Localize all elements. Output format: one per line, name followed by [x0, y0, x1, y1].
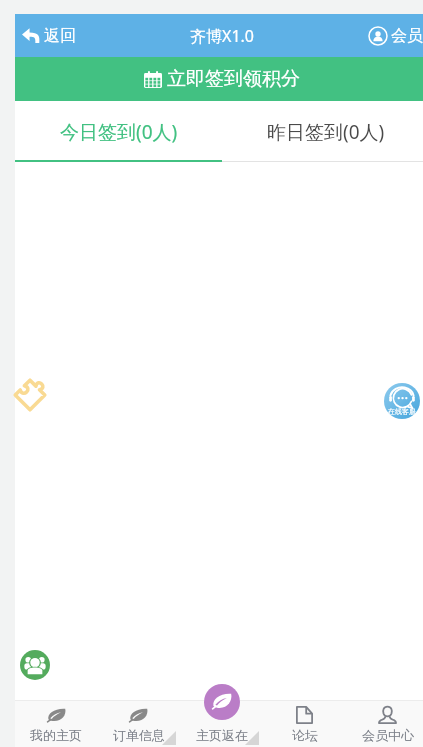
button[interactable]: 我的主页 [15, 700, 97, 747]
staticText: 返回 [44, 26, 76, 46]
staticText: 论坛 [292, 727, 318, 743]
button[interactable]: Customer service [384, 383, 420, 419]
button[interactable]: 订单信息 [97, 700, 180, 747]
staticText: 齐博X1.0 [190, 25, 254, 47]
staticText: 会员 [391, 26, 423, 46]
button[interactable]: 返回 [15, 14, 86, 57]
button[interactable]: 会员中心 [346, 700, 423, 747]
staticText: 今日签到(0人) [60, 119, 178, 145]
staticText: 订单信息 [113, 727, 165, 743]
staticText: 主页返在 [196, 727, 248, 743]
staticText: 会员中心 [362, 727, 414, 743]
button[interactable]: 今日签到(0人) [15, 101, 222, 162]
staticText: 立即签到领积分 [167, 67, 300, 91]
button[interactable]: 会员 [359, 14, 423, 57]
other: Plugin [13, 378, 47, 412]
button[interactable]: 昨日签到(0人) [222, 101, 423, 162]
staticText: 在线客服 [388, 407, 416, 416]
button[interactable]: Group [20, 650, 50, 680]
staticText: 昨日签到(0人) [267, 119, 385, 145]
button[interactable]: 论坛 [263, 700, 346, 747]
button[interactable]: 主页返在 [180, 700, 263, 747]
staticText: 我的主页 [30, 727, 82, 743]
button[interactable]: 立即签到领积分 [15, 57, 423, 101]
button[interactable]: Home [204, 684, 240, 720]
